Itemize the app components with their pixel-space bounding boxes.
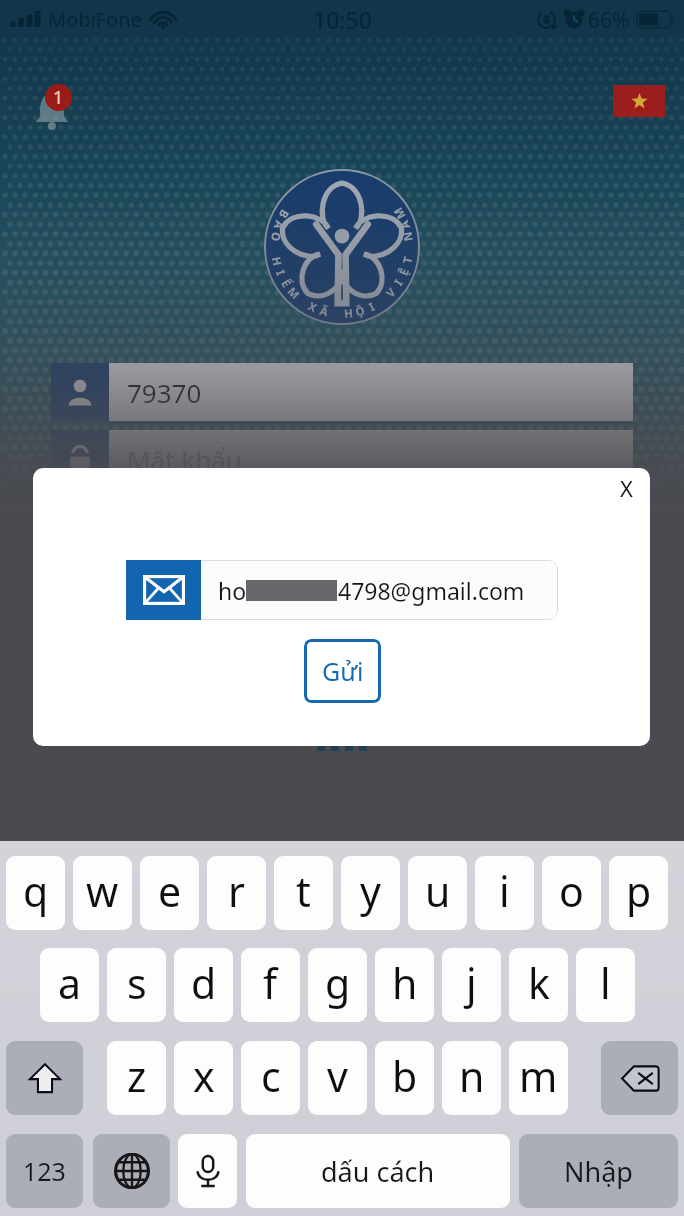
button[interactable]: o xyxy=(542,856,601,930)
staticText: c xyxy=(261,1048,281,1104)
staticText: MobiFone xyxy=(48,6,142,33)
staticText: u xyxy=(425,863,451,919)
button[interactable]: m xyxy=(509,1041,568,1115)
button[interactable]: Gửi xyxy=(304,639,381,703)
staticText: 10:50 xyxy=(313,4,372,35)
staticText: k xyxy=(528,955,550,1011)
button[interactable]: c xyxy=(241,1041,300,1115)
staticText: ho xyxy=(218,575,247,606)
button[interactable]: q xyxy=(6,856,65,930)
staticText: M xyxy=(284,284,303,303)
button[interactable]: z xyxy=(107,1041,166,1115)
button[interactable]: w xyxy=(73,856,132,930)
staticText: o xyxy=(559,863,584,919)
staticText: l xyxy=(600,955,611,1011)
button[interactable]: n xyxy=(442,1041,501,1115)
staticText: m xyxy=(519,1048,558,1104)
staticText: a xyxy=(58,955,82,1011)
staticText: Ả xyxy=(270,218,288,231)
button[interactable]: r xyxy=(207,856,266,930)
staticText: 79370 xyxy=(127,375,202,410)
staticText: j xyxy=(466,955,477,1011)
button[interactable]: Nhập xyxy=(519,1134,678,1208)
button[interactable]: i xyxy=(475,856,534,930)
staticText: p xyxy=(626,863,652,919)
staticText: X xyxy=(305,298,320,316)
button[interactable]: b xyxy=(375,1041,434,1115)
button[interactable]: Shift xyxy=(6,1041,83,1115)
button[interactable]: k xyxy=(509,948,568,1022)
staticText: 123 xyxy=(23,1154,66,1188)
button[interactable]: Close xyxy=(608,470,644,506)
staticText: r xyxy=(228,863,245,919)
staticText: A xyxy=(396,218,414,231)
staticText: Ộ xyxy=(353,302,367,321)
staticText: f xyxy=(263,955,278,1011)
button[interactable]: 123 xyxy=(6,1134,83,1208)
staticText: I xyxy=(272,267,288,278)
button[interactable]: p xyxy=(609,856,668,930)
button[interactable]: d xyxy=(174,948,233,1022)
button[interactable]: t xyxy=(274,856,333,930)
staticText: t xyxy=(296,863,311,919)
staticText: q xyxy=(23,863,49,919)
staticText: g xyxy=(325,955,351,1011)
staticText: Ã xyxy=(318,303,330,320)
button[interactable]: Change keyboard xyxy=(93,1134,170,1208)
staticText: 4798@gmail.com xyxy=(338,575,525,606)
staticText: 66% xyxy=(588,6,630,35)
staticText: Gửi xyxy=(322,654,364,688)
staticText: w xyxy=(86,863,119,919)
button[interactable]: g xyxy=(308,948,367,1022)
button[interactable]: dấu cách xyxy=(246,1134,510,1208)
staticText: Mật khẩu xyxy=(127,442,242,477)
button[interactable]: y xyxy=(341,856,400,930)
staticText: X xyxy=(620,473,633,503)
staticText: T xyxy=(399,255,416,265)
button[interactable]: a xyxy=(40,948,99,1022)
button[interactable]: Notifications xyxy=(26,86,82,142)
staticText: I xyxy=(391,276,407,289)
staticText: n xyxy=(459,1048,485,1104)
staticText: V xyxy=(382,284,399,301)
button[interactable]: u xyxy=(408,856,467,930)
button[interactable]: Backspace xyxy=(601,1041,678,1115)
button[interactable]: x xyxy=(174,1041,233,1115)
staticText: y xyxy=(360,863,381,919)
button[interactable]: j xyxy=(442,948,501,1022)
button[interactable]: h xyxy=(375,948,434,1022)
staticText: O xyxy=(267,230,284,243)
staticText: 1 xyxy=(53,85,64,110)
staticText: dấu cách xyxy=(321,1153,435,1190)
button[interactable]: Language xyxy=(613,85,665,117)
staticText: d xyxy=(191,955,217,1011)
staticText: i xyxy=(499,863,510,919)
button[interactable]: v xyxy=(308,1041,367,1115)
button[interactable]: Dictation xyxy=(178,1134,237,1208)
staticText: I xyxy=(366,299,378,315)
staticText: x xyxy=(193,1048,215,1104)
staticText: Ệ xyxy=(395,266,413,278)
staticText: h xyxy=(392,955,418,1011)
staticText: Nhập xyxy=(564,1153,633,1190)
button[interactable]: f xyxy=(241,948,300,1022)
staticText: z xyxy=(127,1048,147,1104)
staticText: v xyxy=(327,1048,348,1104)
staticText: B xyxy=(275,206,293,221)
staticText: e xyxy=(158,863,182,919)
staticText: H xyxy=(268,255,285,267)
button[interactable]: e xyxy=(140,856,199,930)
staticText: Ể xyxy=(277,276,294,291)
staticText: M xyxy=(390,204,410,222)
staticText: b xyxy=(392,1048,418,1104)
staticText: s xyxy=(127,955,147,1011)
button[interactable]: l xyxy=(576,948,635,1022)
staticText: H xyxy=(343,305,354,322)
button[interactable]: s xyxy=(107,948,166,1022)
staticText: N xyxy=(399,230,417,243)
